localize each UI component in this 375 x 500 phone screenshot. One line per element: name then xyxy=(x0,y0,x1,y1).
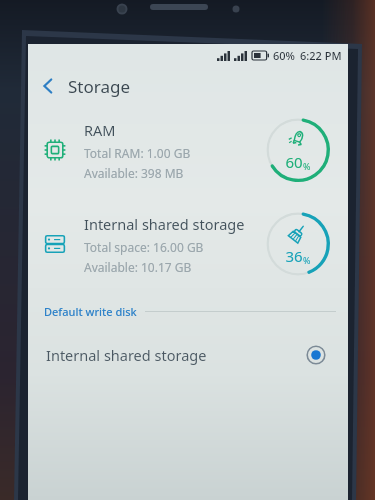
button[interactable]: Back xyxy=(28,66,68,106)
staticText: Internal shared storage xyxy=(84,214,245,234)
button[interactable]: Internal shared storage xyxy=(28,333,348,377)
staticText: Total RAM: 1.00 GB xyxy=(84,145,191,161)
button[interactable]: Internal shared storage xyxy=(28,200,348,288)
staticText: Total space: 16.00 GB xyxy=(84,239,204,255)
staticText: Internal shared storage xyxy=(46,345,207,365)
staticText: 6:22 PM xyxy=(300,48,342,63)
button[interactable]: RAM xyxy=(28,106,348,194)
staticText: Default write disk xyxy=(44,304,137,319)
staticText: Storage xyxy=(68,75,131,98)
staticText: Available: 398 MB xyxy=(84,165,184,181)
staticText: RAM xyxy=(84,120,116,140)
staticText: 60 xyxy=(285,152,303,172)
staticText: 36 xyxy=(285,246,303,266)
staticText: % xyxy=(303,160,311,172)
staticText: 60% xyxy=(273,48,295,63)
staticText: Available: 10.17 GB xyxy=(84,259,192,275)
staticText: % xyxy=(303,254,311,266)
